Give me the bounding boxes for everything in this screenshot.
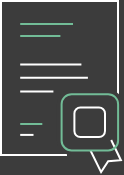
button[interactable]: Document with message illustration bbox=[0, 0, 124, 175]
